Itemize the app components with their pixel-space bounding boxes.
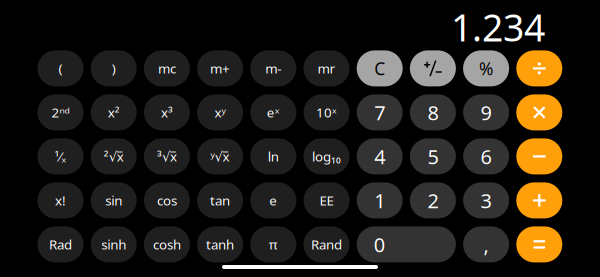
staticText: ln — [268, 147, 279, 165]
button[interactable]: mr — [303, 50, 349, 86]
button[interactable]: , — [463, 226, 509, 262]
staticText: x³ — [161, 103, 173, 121]
button[interactable]: mc — [144, 50, 190, 86]
button[interactable]: 8 — [410, 94, 456, 130]
button[interactable]: sinh — [91, 226, 137, 262]
button[interactable]: Minus — [516, 138, 562, 174]
staticText: ) — [112, 59, 116, 77]
button[interactable]: ln — [250, 138, 296, 174]
staticText: ¹⁄ₓ — [54, 147, 66, 165]
staticText: π — [269, 235, 278, 253]
button[interactable]: ¹⁄ₓ — [37, 138, 83, 174]
button[interactable]: Divide — [516, 50, 562, 86]
button[interactable]: x! — [37, 182, 83, 218]
button[interactable]: 1 — [357, 182, 403, 218]
staticText: EE — [319, 191, 333, 209]
button[interactable]: 2ⁿᵈ — [37, 94, 83, 130]
button[interactable]: ) — [91, 50, 137, 86]
staticText: C — [374, 57, 385, 80]
button[interactable]: Rad — [37, 226, 83, 262]
staticText: 1.234 — [451, 2, 545, 52]
button[interactable]: e — [250, 182, 296, 218]
staticText: cos — [157, 191, 177, 209]
staticText: ²√x̅ — [104, 147, 124, 165]
staticText: 5 — [427, 143, 438, 170]
button[interactable]: xʸ — [197, 94, 243, 130]
staticText: 0 — [374, 231, 385, 258]
button[interactable]: % — [463, 50, 509, 86]
button[interactable]: m+ — [197, 50, 243, 86]
staticText: 10ˣ — [316, 103, 337, 121]
button[interactable]: m- — [250, 50, 296, 86]
staticText: m+ — [210, 59, 230, 77]
button[interactable]: 6 — [463, 138, 509, 174]
staticText: x² — [108, 103, 120, 121]
button[interactable]: 7 — [357, 94, 403, 130]
button[interactable]: Multiply — [516, 94, 562, 130]
button[interactable]: tan — [197, 182, 243, 218]
button[interactable]: 5 — [410, 138, 456, 174]
button[interactable]: 3 — [463, 182, 509, 218]
staticText: log₁₀ — [312, 147, 341, 165]
staticText: mr — [317, 59, 335, 77]
staticText: 2 — [427, 187, 438, 214]
staticText: eˣ — [267, 103, 280, 121]
button[interactable]: ²√x̅ — [91, 138, 137, 174]
staticText: mc — [158, 59, 176, 77]
staticText: xʸ — [215, 103, 226, 121]
staticText: 7 — [374, 99, 385, 126]
button[interactable]: 0 — [357, 226, 456, 262]
button[interactable]: x³ — [144, 94, 190, 130]
button[interactable]: ʸ√x̅ — [197, 138, 243, 174]
button[interactable]: 9 — [463, 94, 509, 130]
staticText: ( — [58, 59, 62, 77]
button[interactable]: Plus — [516, 182, 562, 218]
staticText: x! — [55, 191, 66, 209]
button[interactable]: Plus Minus — [410, 50, 456, 86]
staticText: sin — [105, 191, 122, 209]
staticText: 6 — [481, 143, 492, 170]
button[interactable]: log₁₀ — [303, 138, 349, 174]
button[interactable]: 2 — [410, 182, 456, 218]
staticText: ³√x̅ — [157, 147, 177, 165]
button[interactable]: tanh — [197, 226, 243, 262]
button[interactable]: eˣ — [250, 94, 296, 130]
staticText: Rad — [49, 235, 72, 253]
staticText: tanh — [206, 235, 234, 253]
staticText: Rand — [311, 235, 342, 253]
staticText: , — [484, 231, 489, 258]
button[interactable]: cosh — [144, 226, 190, 262]
button[interactable]: cos — [144, 182, 190, 218]
button[interactable]: Rand — [303, 226, 349, 262]
button[interactable]: 4 — [357, 138, 403, 174]
button[interactable]: Equals — [516, 226, 562, 262]
staticText: cosh — [153, 235, 181, 253]
staticText: 8 — [427, 99, 438, 126]
button[interactable]: sin — [91, 182, 137, 218]
button[interactable]: x² — [91, 94, 137, 130]
button[interactable]: π — [250, 226, 296, 262]
staticText: tan — [210, 191, 230, 209]
staticText: 3 — [481, 187, 492, 214]
button[interactable]: ( — [37, 50, 83, 86]
staticText: % — [479, 57, 493, 80]
staticText: 4 — [374, 143, 385, 170]
staticText: sinh — [101, 235, 126, 253]
staticText: m- — [265, 59, 281, 77]
staticText: 2ⁿᵈ — [51, 103, 69, 121]
button[interactable]: ³√x̅ — [144, 138, 190, 174]
button[interactable]: EE — [303, 182, 349, 218]
staticText: e — [269, 191, 277, 209]
staticText: 9 — [481, 99, 492, 126]
button[interactable]: 10ˣ — [303, 94, 349, 130]
staticText: ʸ√x̅ — [211, 147, 230, 165]
staticText: 1 — [374, 187, 385, 214]
button[interactable]: C — [357, 50, 403, 86]
